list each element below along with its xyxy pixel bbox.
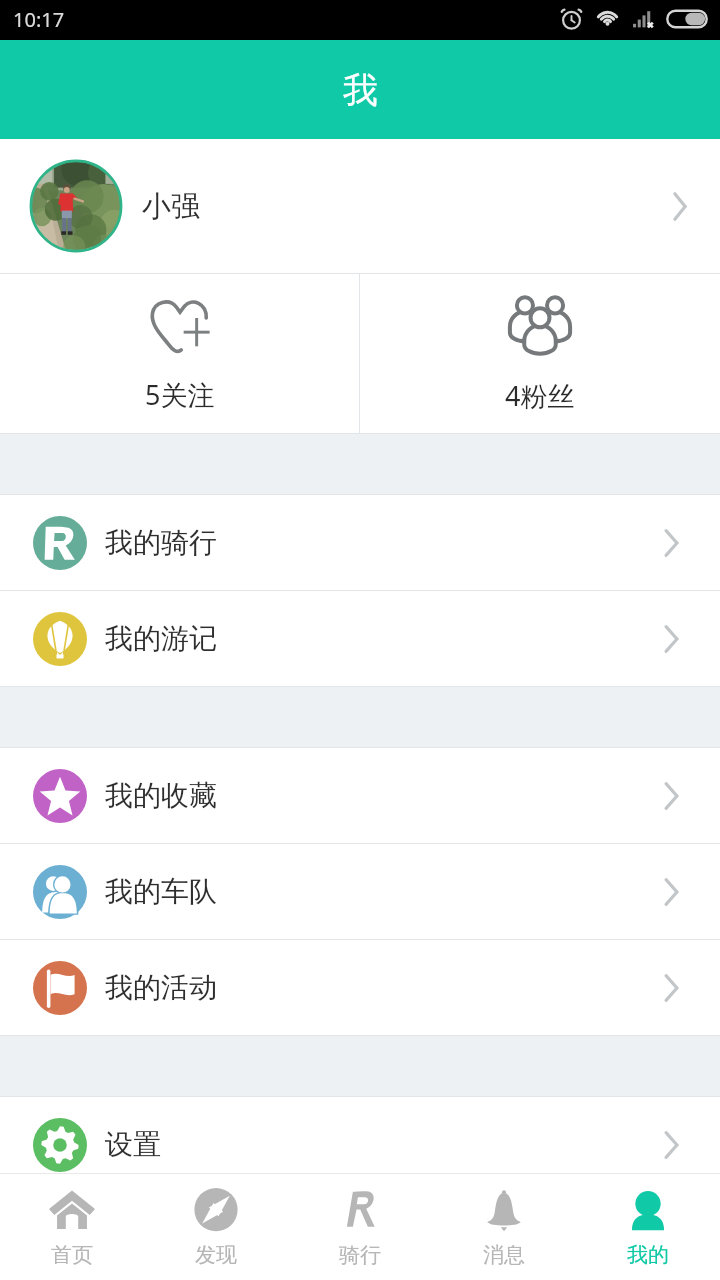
staticText: 我 bbox=[343, 68, 378, 112]
staticText: 4粉丝 bbox=[505, 377, 575, 414]
button[interactable]: 我的骑行 bbox=[0, 495, 720, 590]
staticText: 5关注 bbox=[145, 376, 215, 413]
button[interactable]: 小强 bbox=[0, 139, 720, 273]
button[interactable]: 4粉丝 bbox=[360, 274, 720, 433]
staticText: 骑行 bbox=[339, 1242, 381, 1268]
button[interactable]: 我的收藏 bbox=[0, 748, 720, 843]
staticText: 小强 bbox=[142, 188, 200, 225]
button[interactable]: 首页 bbox=[0, 1174, 144, 1280]
staticText: 我的收藏 bbox=[105, 778, 217, 813]
button[interactable]: 我的 bbox=[576, 1174, 720, 1280]
button[interactable]: 我的车队 bbox=[0, 844, 720, 939]
staticText: 消息 bbox=[483, 1242, 525, 1268]
staticText: 发现 bbox=[195, 1242, 237, 1268]
staticText: 我的车队 bbox=[105, 874, 217, 909]
button[interactable]: 我的游记 bbox=[0, 591, 720, 686]
staticText: 我的活动 bbox=[105, 970, 217, 1005]
button[interactable]: 5关注 bbox=[0, 274, 359, 433]
button[interactable]: 消息 bbox=[432, 1174, 576, 1280]
staticText: 我的 bbox=[627, 1242, 669, 1268]
staticText: 设置 bbox=[105, 1127, 161, 1162]
staticText: 我的游记 bbox=[105, 621, 217, 656]
button[interactable]: 发现 bbox=[144, 1174, 288, 1280]
button[interactable]: 骑行 bbox=[288, 1174, 432, 1280]
staticText: 我的骑行 bbox=[105, 525, 217, 560]
button[interactable]: 我的活动 bbox=[0, 940, 720, 1035]
staticText: 10:17 bbox=[13, 6, 65, 33]
button[interactable]: 设置 bbox=[0, 1097, 720, 1173]
staticText: 首页 bbox=[51, 1242, 93, 1268]
